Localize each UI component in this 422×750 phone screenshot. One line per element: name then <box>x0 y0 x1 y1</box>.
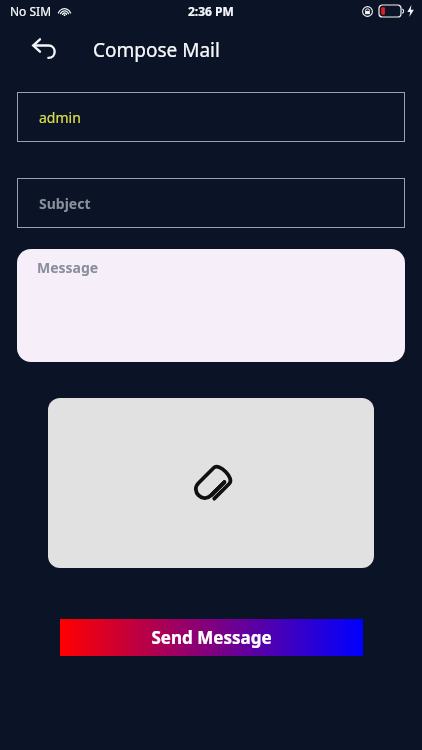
button[interactable]: Add attachment <box>48 398 374 568</box>
staticText: No SIM <box>10 3 52 19</box>
button[interactable]: Send Message <box>60 619 363 656</box>
button[interactable]: Subject <box>17 178 405 228</box>
staticText: Send Message <box>151 626 272 649</box>
staticText: Compose Mail <box>93 37 220 63</box>
button[interactable]: admin <box>17 92 405 142</box>
staticText: 2:36 PM <box>188 3 234 19</box>
staticText: Message <box>37 258 99 277</box>
button[interactable]: Message <box>17 249 405 362</box>
button[interactable]: Back <box>26 31 64 69</box>
staticText: admin <box>39 108 81 127</box>
staticText: Subject <box>39 194 91 213</box>
